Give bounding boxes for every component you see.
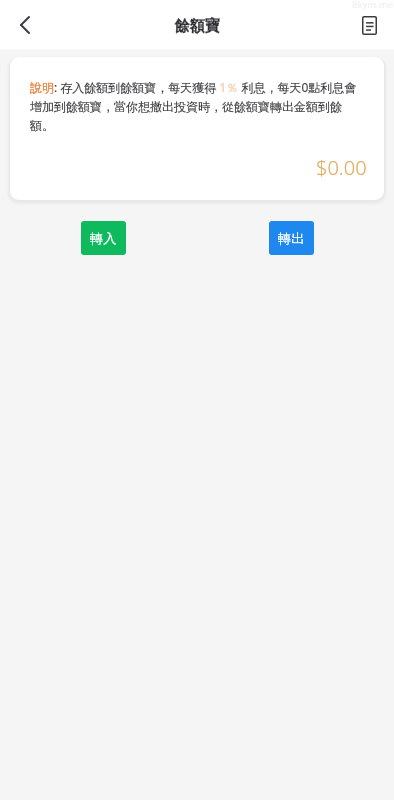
staticText: 轉出: [278, 230, 305, 247]
staticText: 轉入: [90, 230, 117, 247]
button[interactable]: 轉入: [81, 221, 126, 255]
staticText: 8kym.me: [352, 0, 394, 11]
staticText: $0.00: [316, 154, 367, 181]
staticText: 說明: 存入餘額到餘額寶，每天獲得 1％ 利息，每天0點利息會增加到餘額寶，當你…: [30, 79, 363, 134]
staticText: 餘額寶: [175, 17, 220, 36]
button[interactable]: Records: [351, 7, 387, 43]
button[interactable]: 轉出: [269, 221, 314, 255]
staticText: 說明: 存入餘額到餘額寶，每天獲得 1％ 利息，每天0點利息會增加到餘額寶，當你…: [30, 79, 363, 134]
staticText: 餘額寶: [175, 17, 220, 36]
button[interactable]: Back: [5, 5, 45, 45]
